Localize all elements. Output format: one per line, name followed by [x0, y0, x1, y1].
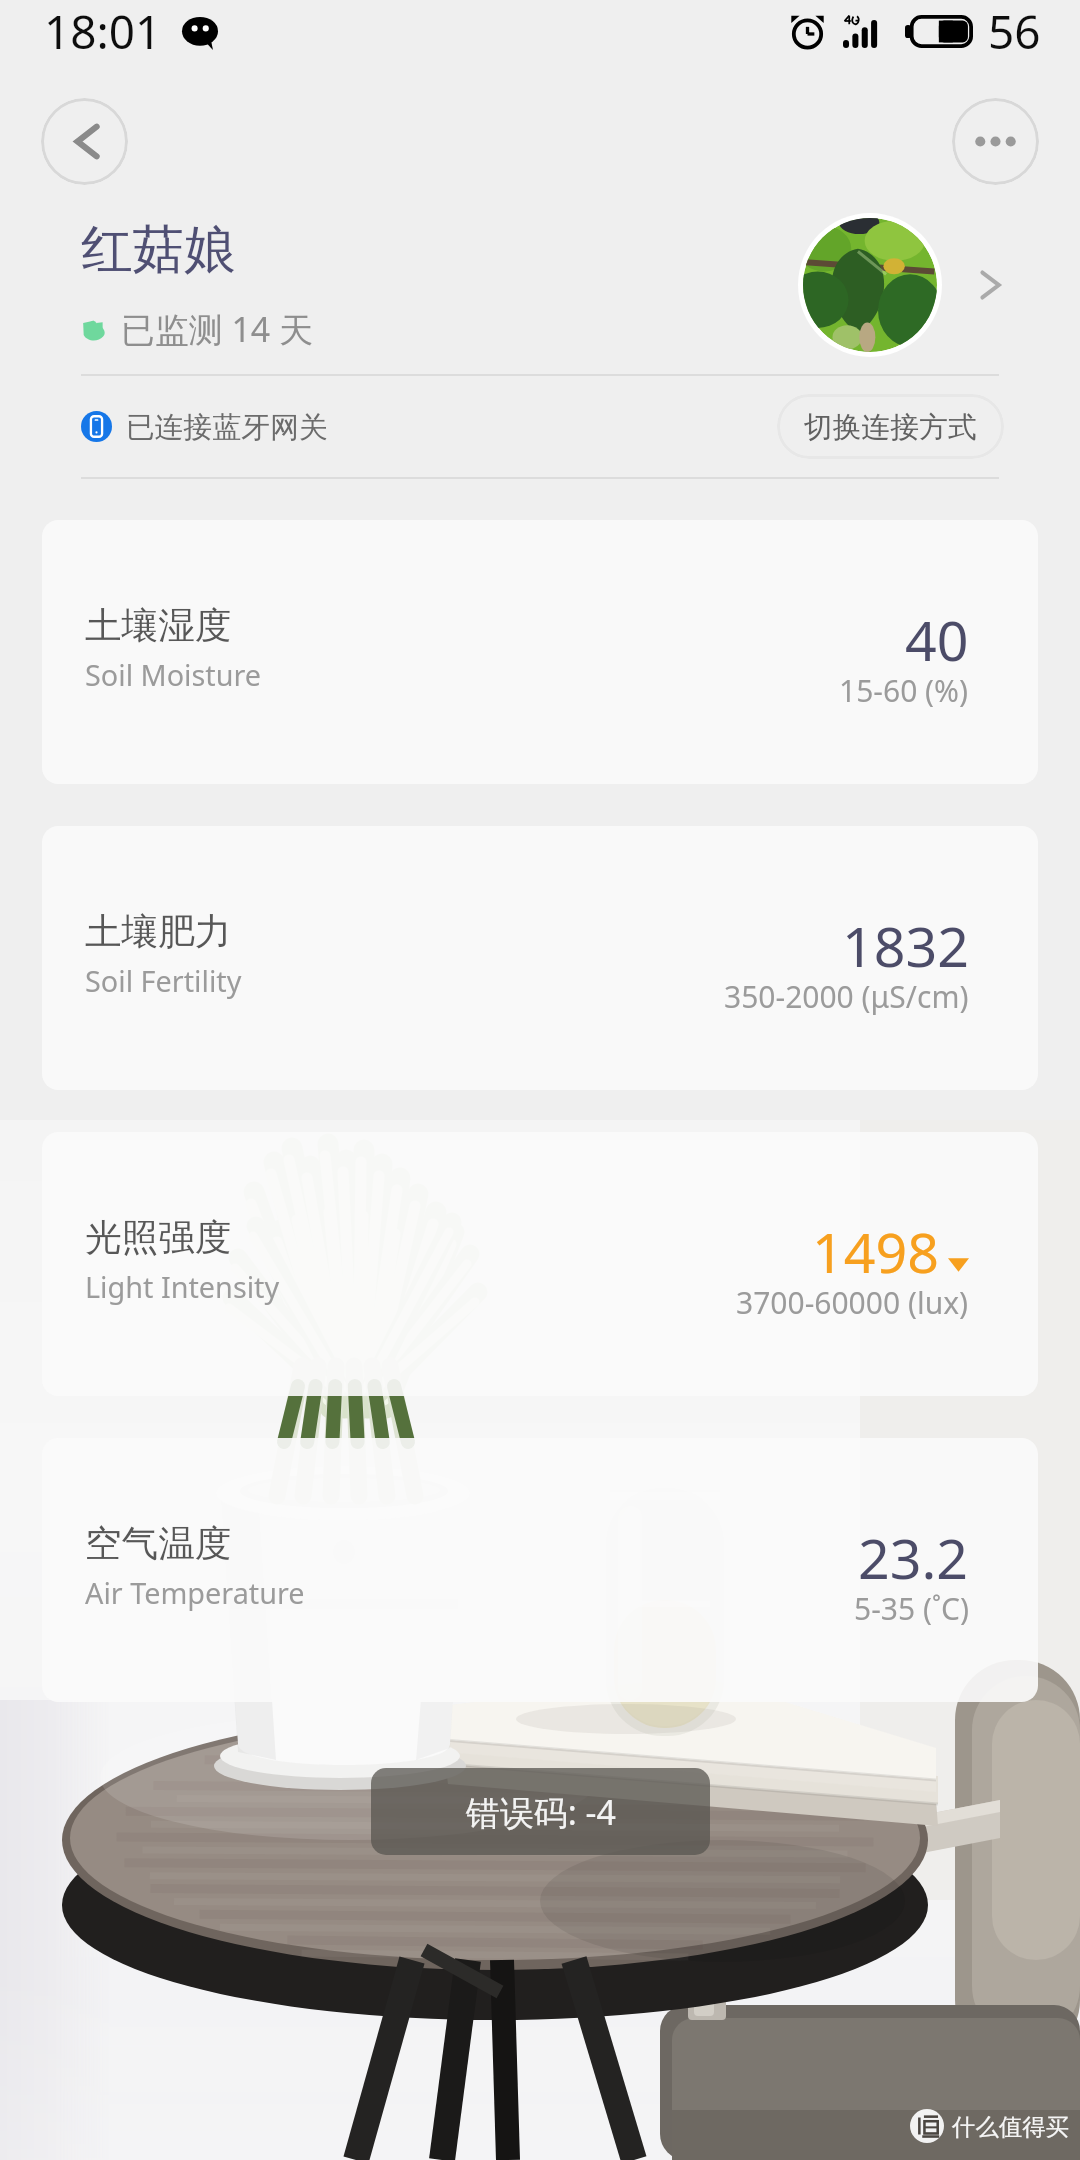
staticText: 40 — [905, 602, 969, 678]
button[interactable]: More options — [952, 98, 1039, 185]
button[interactable]: Back — [41, 98, 128, 185]
staticText: Air Temperature — [85, 1573, 305, 1612]
button[interactable]: Plant details — [969, 261, 1017, 309]
staticText: 红菇娘 — [81, 217, 236, 282]
button[interactable]: 光照强度 — [42, 1132, 1038, 1396]
button[interactable]: Plant photo — [803, 218, 937, 352]
staticText: 土壤肥力 — [85, 909, 232, 955]
staticText: 1832 — [842, 908, 969, 984]
staticText: 1498 — [812, 1214, 939, 1290]
staticText: 15-60 (%) — [839, 670, 969, 711]
staticText: Soil Moisture — [85, 655, 262, 694]
staticText: Soil Fertility — [85, 961, 242, 1000]
staticText: 光照强度 — [85, 1215, 232, 1261]
staticText: 切换连接方式 — [804, 409, 977, 445]
staticText: 土壤湿度 — [85, 603, 232, 649]
staticText: 错误码: -4 — [466, 1789, 616, 1835]
staticText: 18:01 — [44, 0, 162, 63]
staticText: 23.2 — [858, 1520, 969, 1596]
button[interactable]: 切换连接方式 — [777, 394, 1004, 459]
staticText: 已连接蓝牙网关 — [126, 409, 328, 445]
button[interactable]: 土壤肥力 — [42, 826, 1038, 1090]
staticText: 3700-60000 (lux) — [736, 1282, 969, 1323]
button[interactable]: 土壤湿度 — [42, 520, 1038, 784]
staticText: 350-2000 (μS/cm) — [724, 976, 969, 1017]
staticText: 56 — [988, 0, 1041, 63]
staticText: Light Intensity — [85, 1267, 280, 1306]
staticText: 已监测 14 天 — [121, 306, 313, 352]
staticText: 空气温度 — [85, 1521, 232, 1567]
button[interactable]: 空气温度 — [42, 1438, 1038, 1702]
staticText: 5-35 (˚C) — [854, 1588, 969, 1629]
staticText: 什么值得买 — [952, 2112, 1069, 2141]
